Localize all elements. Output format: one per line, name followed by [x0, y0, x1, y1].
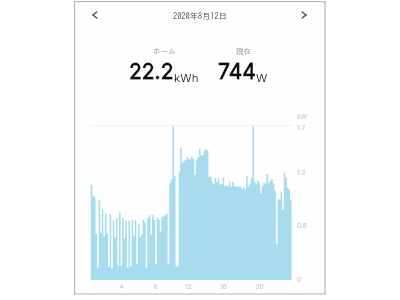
- staticText: ホーム: [153, 47, 176, 55]
- staticText: kW: [297, 113, 307, 121]
- button[interactable]: Next day: [294, 4, 316, 26]
- staticText: 現在: [236, 47, 251, 55]
- staticText: 8: [153, 283, 158, 291]
- staticText: 20: [255, 283, 264, 291]
- staticText: 4: [119, 283, 124, 291]
- staticText: 16: [220, 283, 227, 291]
- staticText: 22.2: [129, 59, 174, 84]
- staticText: 0.6: [297, 222, 307, 230]
- staticText: 0: [297, 276, 302, 284]
- staticText: 1.2: [297, 169, 306, 177]
- staticText: kWh: [174, 71, 199, 85]
- staticText: 12: [185, 283, 192, 291]
- staticText: 1.7: [297, 124, 306, 132]
- staticText: 2020年8月12日: [74, 12, 326, 20]
- staticText: W: [256, 71, 268, 85]
- staticText: 744: [218, 59, 256, 84]
- button[interactable]: Previous day: [83, 4, 105, 26]
